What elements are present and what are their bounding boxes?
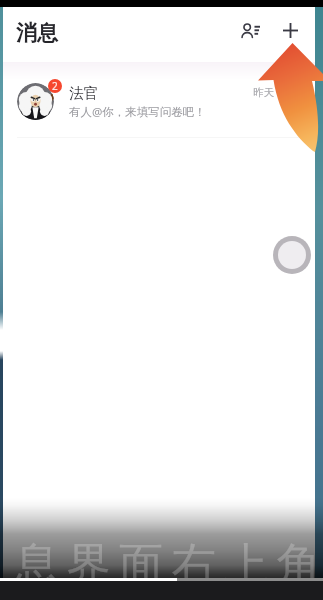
button[interactable]: Contacts	[232, 12, 268, 48]
staticText: 2	[52, 79, 58, 93]
staticText: 有人@你，来填写问卷吧！	[69, 104, 206, 120]
staticText: 昨天	[253, 86, 274, 99]
staticText: 法官	[69, 84, 98, 102]
staticText: 息界面右上角	[10, 537, 323, 592]
button[interactable]: 2	[3, 62, 315, 138]
staticText: 消息	[16, 20, 58, 46]
button[interactable]: New chat	[272, 12, 308, 48]
